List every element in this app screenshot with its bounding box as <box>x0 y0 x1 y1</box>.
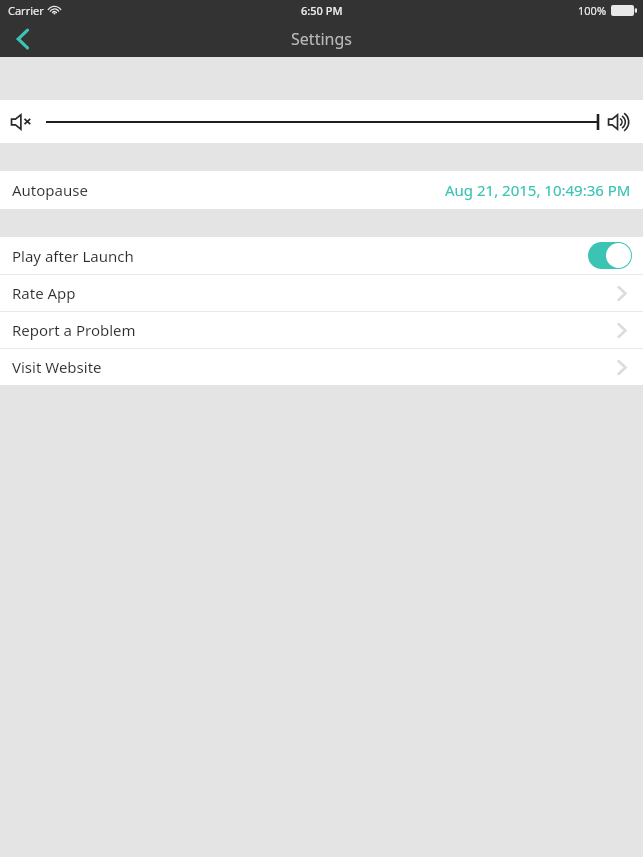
staticText: 6:50 PM <box>301 3 343 18</box>
staticText: Report a Problem <box>12 320 136 340</box>
staticText: Autopause <box>12 180 88 200</box>
button[interactable]: Volume slider <box>0 110 643 134</box>
button[interactable]: Back <box>0 20 46 57</box>
staticText: Rate App <box>12 283 76 303</box>
staticText: 100% <box>578 3 607 18</box>
button[interactable]: Play after Launch <box>0 237 643 274</box>
staticText: Visit Website <box>12 357 102 377</box>
staticText: Aug 21, 2015, 10:49:36 PM <box>445 180 631 200</box>
staticText: Carrier <box>8 3 44 18</box>
button[interactable]: Autopause <box>0 171 643 209</box>
staticText: Play after Launch <box>12 246 134 266</box>
button[interactable]: Rate App <box>0 275 643 311</box>
button[interactable]: Play after Launch toggle <box>588 242 632 269</box>
button[interactable]: Report a Problem <box>0 312 643 348</box>
staticText: Settings <box>291 28 352 50</box>
button[interactable]: Visit Website <box>0 349 643 385</box>
